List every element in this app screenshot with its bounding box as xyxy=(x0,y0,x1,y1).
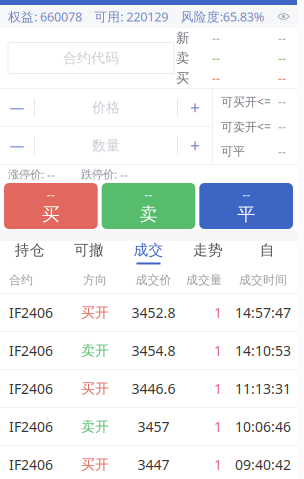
button[interactable]: Toggle balance visibility xyxy=(277,10,290,23)
button[interactable]: 自 xyxy=(238,241,297,267)
button[interactable]: 持仓 xyxy=(0,241,59,267)
staticText: -- xyxy=(278,93,286,110)
button[interactable]: IF2406 xyxy=(0,446,297,479)
staticText: 11:13:31 xyxy=(235,379,291,398)
staticText: 价格 xyxy=(92,99,120,116)
staticText: 3447 xyxy=(137,455,169,474)
staticText: 1 xyxy=(214,455,222,474)
button[interactable]: -- xyxy=(4,183,98,229)
staticText: 涨停价: -- xyxy=(8,166,55,182)
staticText: 买开 xyxy=(81,456,109,473)
staticText: 持仓 xyxy=(15,241,45,259)
staticText: 可用: 220129 xyxy=(94,8,168,25)
staticText: + xyxy=(190,134,200,157)
staticText: — xyxy=(9,97,24,117)
staticText: 自 xyxy=(260,241,275,259)
staticText: 1 xyxy=(214,379,222,398)
button[interactable]: IF2406 xyxy=(0,332,297,370)
staticText: IF2406 xyxy=(9,341,53,360)
staticText: 风险度:65.83% xyxy=(181,8,265,25)
staticText: 3457 xyxy=(137,417,169,436)
staticText: 跌停价: -- xyxy=(81,166,128,182)
staticText: 3452.8 xyxy=(131,303,175,322)
staticText: 新 xyxy=(176,30,189,46)
staticText: 买 xyxy=(42,203,60,225)
staticText: 14:10:53 xyxy=(235,341,291,360)
button[interactable]: IF2406 xyxy=(0,294,297,332)
button[interactable]: 合约代码 xyxy=(0,28,174,88)
button[interactable]: Decrease 数量 xyxy=(0,127,34,164)
staticText: -- xyxy=(278,30,286,46)
staticText: 可平 xyxy=(221,144,245,159)
staticText: 卖开 xyxy=(81,418,109,435)
staticText: -- xyxy=(47,186,55,203)
staticText: -- xyxy=(242,186,250,203)
button[interactable]: IF2406 xyxy=(0,370,297,408)
staticText: -- xyxy=(278,118,286,135)
button[interactable]: 走势 xyxy=(178,241,238,267)
staticText: 3454.8 xyxy=(131,341,175,360)
staticText: 买 xyxy=(176,70,189,86)
staticText: 3446.6 xyxy=(131,379,175,398)
staticText: IF2406 xyxy=(9,303,53,322)
button[interactable]: -- xyxy=(199,183,293,229)
staticText: 卖开 xyxy=(81,342,109,359)
staticText: 1 xyxy=(214,341,222,360)
staticText: 09:40:42 xyxy=(235,455,291,474)
staticText: — xyxy=(9,135,24,155)
staticText: 走势 xyxy=(193,241,223,259)
staticText: 买开 xyxy=(81,380,109,397)
staticText: 成交 xyxy=(133,241,163,259)
button[interactable]: 成交 xyxy=(119,241,178,267)
staticText: -- xyxy=(278,143,286,160)
button[interactable]: Increase 数量 xyxy=(178,127,212,164)
staticText: 平 xyxy=(237,203,255,225)
staticText: 10:06:46 xyxy=(235,417,291,436)
staticText: 数量 xyxy=(92,137,120,154)
staticText: 成交量 xyxy=(186,272,222,287)
staticText: -- xyxy=(278,70,286,86)
staticText: 卖 xyxy=(176,50,189,66)
button[interactable]: 可撤 xyxy=(59,241,119,267)
staticText: 14:57:47 xyxy=(235,303,291,322)
staticText: -- xyxy=(144,186,152,203)
staticText: -- xyxy=(212,50,220,66)
staticText: 卖 xyxy=(139,203,157,225)
staticText: 合约代码 xyxy=(63,49,119,67)
staticText: 1 xyxy=(214,417,222,436)
staticText: -- xyxy=(278,50,286,66)
staticText: 方向 xyxy=(83,272,107,287)
button[interactable]: Decrease 价格 xyxy=(0,89,34,126)
button[interactable]: IF2406 xyxy=(0,408,297,446)
staticText: 合约 xyxy=(9,272,33,287)
staticText: -- xyxy=(212,70,220,86)
staticText: 可买开<= xyxy=(221,93,271,110)
staticText: 成交价 xyxy=(135,272,171,287)
button[interactable]: -- xyxy=(102,183,195,229)
staticText: 可卖开<= xyxy=(221,118,271,135)
staticText: 可撤 xyxy=(74,241,104,259)
staticText: -- xyxy=(212,30,220,46)
staticText: IF2406 xyxy=(9,417,53,436)
staticText: + xyxy=(190,96,200,119)
staticText: 成交时间 xyxy=(239,272,287,287)
staticText: IF2406 xyxy=(9,455,53,474)
staticText: 权益: 660078 xyxy=(8,8,82,25)
staticText: 1 xyxy=(214,303,222,322)
button[interactable]: Increase 价格 xyxy=(178,89,212,126)
staticText: 买开 xyxy=(81,304,109,321)
staticText: IF2406 xyxy=(9,379,53,398)
